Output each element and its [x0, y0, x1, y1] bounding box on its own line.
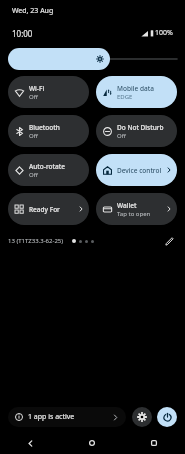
staticText: 13 (T1TZ33.3-62-25) [8, 237, 64, 245]
button[interactable]: 1 app is active [8, 407, 126, 427]
staticText: 1 app is active [28, 412, 75, 422]
button[interactable]: Bluetooth [8, 115, 89, 147]
staticText: Auto-rotate [29, 162, 65, 171]
button[interactable]: Auto-rotate [8, 154, 89, 186]
button[interactable]: Wallet [96, 193, 177, 225]
staticText: Wi-Fi [29, 84, 45, 93]
staticText: Device control [117, 166, 162, 175]
staticText: 10:00 [12, 28, 33, 39]
button[interactable]: Back [0, 432, 61, 454]
staticText: Do Not Disturb [117, 123, 164, 132]
staticText: Ready For [29, 205, 60, 214]
button[interactable]: Edit tiles [161, 233, 177, 249]
staticText: Wallet [117, 201, 137, 210]
button[interactable]: Wi-Fi [8, 76, 89, 108]
button[interactable]: Power [157, 407, 177, 427]
staticText: Tap to open [117, 210, 151, 218]
staticText: 100% [155, 28, 173, 38]
button[interactable]: Brightness [8, 48, 177, 70]
staticText: Off [29, 132, 38, 140]
staticText: Off [29, 171, 38, 179]
button[interactable]: Home [61, 432, 123, 454]
staticText: Wed, 23 Aug [12, 6, 54, 16]
staticText: Bluetooth [29, 123, 60, 132]
staticText: Off [117, 132, 126, 140]
button[interactable]: Settings [132, 407, 152, 427]
staticText: Off [29, 93, 38, 101]
button[interactable]: Device control [96, 154, 177, 186]
staticText: Mobile data [117, 84, 154, 93]
button[interactable]: Do Not Disturb [96, 115, 177, 147]
button[interactable]: Mobile data [96, 76, 177, 108]
button[interactable]: Recents [123, 432, 185, 454]
staticText: EDGE [117, 93, 133, 101]
button[interactable]: Ready For [8, 193, 89, 225]
